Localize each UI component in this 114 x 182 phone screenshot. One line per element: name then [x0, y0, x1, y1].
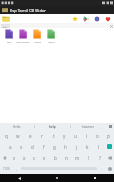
- staticText: .: [101, 166, 103, 171]
- staticText: ,: [16, 166, 18, 171]
- staticText: Hello: [13, 125, 21, 129]
- button[interactable]: d: [27, 141, 38, 152]
- button[interactable]: ?123: [0, 163, 13, 174]
- button[interactable]: Keyboard settings: [106, 123, 114, 130]
- staticText: g: [53, 144, 56, 150]
- staticText: f: [43, 144, 45, 150]
- button[interactable]: x: [19, 152, 29, 163]
- staticText: w: [16, 133, 20, 139]
- button[interactable]: Recent apps: [76, 174, 114, 182]
- button[interactable]: e: [24, 130, 36, 141]
- staticText: v: [43, 155, 46, 161]
- staticText: c: [33, 155, 36, 161]
- button[interactable]: b: [50, 152, 61, 163]
- button[interactable]: n: [61, 152, 72, 163]
- button[interactable]: w: [12, 130, 24, 141]
- button[interactable]: i: [81, 130, 92, 141]
- button[interactable]: help: [35, 123, 70, 130]
- staticText: e: [29, 133, 32, 139]
- button[interactable]: ,: [13, 163, 20, 174]
- button[interactable]: Backspace: [105, 152, 114, 163]
- staticText: p: [107, 133, 110, 139]
- staticText: q: [5, 133, 8, 139]
- button[interactable]: p: [103, 130, 114, 141]
- button[interactable]: u: [70, 130, 81, 141]
- button[interactable]: Like: [104, 15, 112, 23]
- button[interactable]: Hello: [0, 123, 34, 130]
- staticText: n: [65, 155, 68, 161]
- button[interactable]: note3: [30, 29, 44, 43]
- other: Clear: [109, 24, 113, 28]
- button[interactable]: k: [82, 141, 93, 152]
- button[interactable]: item4: [44, 29, 58, 43]
- staticText: i: [86, 133, 88, 139]
- button[interactable]: !: [83, 152, 94, 163]
- button[interactable]: o: [92, 130, 103, 141]
- button[interactable]: file1: [2, 29, 16, 43]
- staticText: item4: [48, 40, 55, 43]
- staticText: however: [82, 125, 95, 129]
- button[interactable]: v: [39, 152, 50, 163]
- button[interactable]: Play Store: [82, 15, 90, 23]
- button[interactable]: l: [93, 141, 104, 152]
- staticText: a: [9, 144, 12, 150]
- button[interactable]: m: [72, 152, 83, 163]
- staticText: d: [31, 144, 34, 150]
- button[interactable]: Home: [38, 174, 76, 182]
- staticText: b: [54, 155, 57, 161]
- button[interactable]: Enter: [104, 141, 114, 152]
- button[interactable]: ?: [94, 152, 105, 163]
- button[interactable]: abc: [0, 23, 114, 28]
- staticText: document2: [16, 40, 30, 43]
- staticText: o: [96, 133, 99, 139]
- button[interactable]: Settings: [93, 15, 101, 23]
- staticText: u: [74, 133, 77, 139]
- button[interactable]: h: [60, 141, 71, 152]
- staticText: z: [13, 155, 16, 161]
- staticText: s: [20, 144, 23, 150]
- staticText: y: [63, 133, 66, 139]
- staticText: h: [64, 144, 67, 150]
- button[interactable]: z: [9, 152, 19, 163]
- staticText: abc: [3, 25, 8, 28]
- button[interactable]: c: [29, 152, 39, 163]
- button[interactable]: a: [4, 141, 16, 152]
- button[interactable]: document2: [16, 29, 30, 43]
- staticText: m: [75, 155, 80, 161]
- staticText: ?123: [3, 167, 10, 171]
- staticText: help: [49, 125, 56, 129]
- staticText: j: [76, 144, 78, 150]
- staticText: l: [98, 144, 100, 150]
- button[interactable]: q: [0, 130, 12, 141]
- button[interactable]: Favorite star: [71, 15, 79, 23]
- button[interactable]: t: [48, 130, 59, 141]
- button[interactable]: Open folder: [2, 15, 10, 23]
- button[interactable]: s: [16, 141, 27, 152]
- staticText: file1: [7, 40, 12, 43]
- button[interactable]: r: [36, 130, 48, 141]
- staticText: note3: [34, 40, 41, 43]
- staticText: x: [23, 155, 26, 161]
- button[interactable]: Back: [0, 174, 38, 182]
- staticText: !: [88, 155, 90, 161]
- staticText: ?: [99, 155, 101, 161]
- button[interactable]: y: [59, 130, 70, 141]
- button[interactable]: Space: [21, 166, 97, 171]
- button[interactable]: Emoji: [105, 163, 114, 174]
- button[interactable]: f: [38, 141, 49, 152]
- button[interactable]: j: [71, 141, 82, 152]
- staticText: t: [53, 133, 55, 139]
- button[interactable]: g: [49, 141, 60, 152]
- staticText: k: [86, 144, 89, 150]
- button[interactable]: Shift: [0, 152, 9, 163]
- button[interactable]: however: [71, 123, 106, 130]
- staticText: Esp Tamil CB Slider: [10, 8, 46, 13]
- staticText: r: [41, 133, 43, 139]
